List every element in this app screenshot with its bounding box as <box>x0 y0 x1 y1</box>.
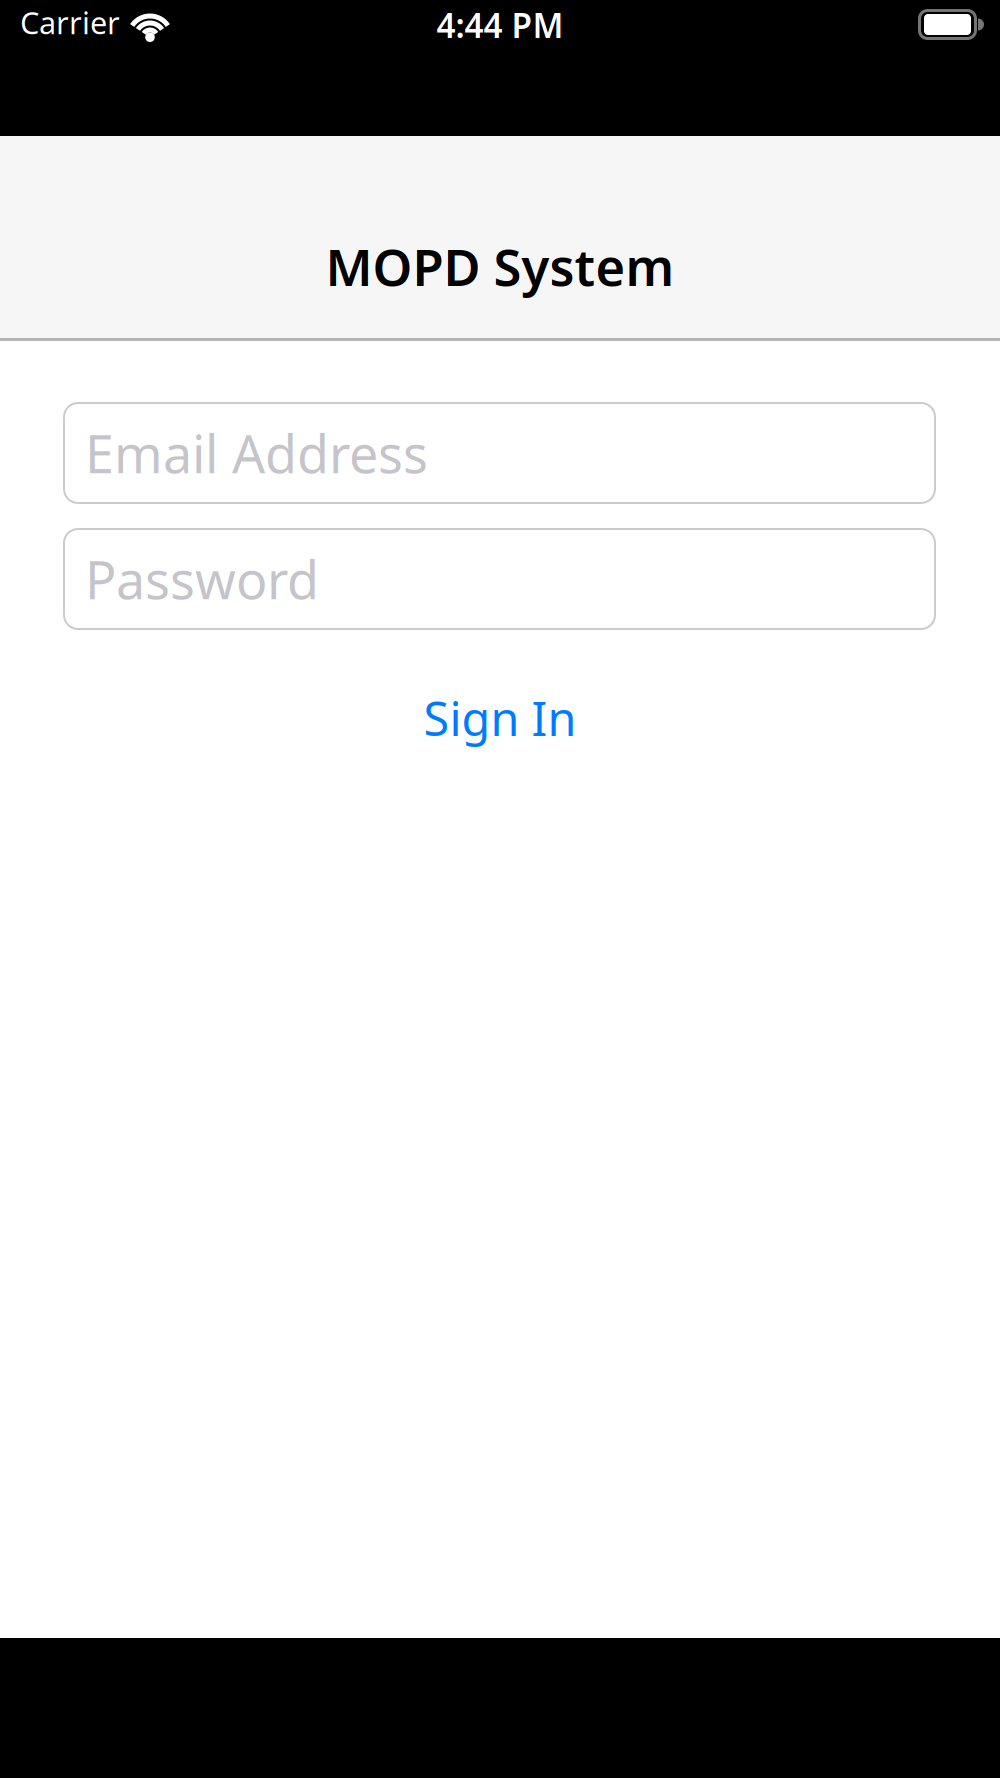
textField[interactable]: Email Address <box>63 402 936 504</box>
staticText: Sign In <box>423 687 576 749</box>
staticText: Carrier <box>20 2 120 43</box>
staticText: MOPD System <box>325 233 674 300</box>
textField[interactable]: Password <box>63 528 936 630</box>
button[interactable]: Sign In <box>423 687 576 749</box>
staticText: Password <box>85 544 319 614</box>
staticText: Email Address <box>85 418 428 488</box>
staticText: 4:44 PM <box>436 3 563 47</box>
